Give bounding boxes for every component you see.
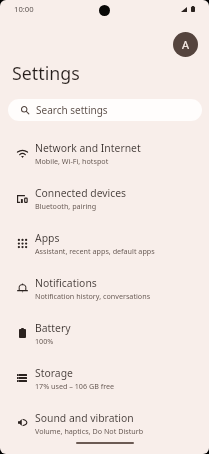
staticText: 10:00 [14,4,34,14]
button[interactable]: Apps [0,221,209,266]
staticText: Settings [12,61,80,85]
staticText: Storage [35,366,73,380]
staticText: Volume, haptics, Do Not Disturb [35,426,144,436]
button[interactable]: Notifications [0,266,209,311]
button[interactable]: Storage [0,356,209,401]
staticText: Network and Internet [35,141,141,155]
staticText: Mobile, Wi-Fi, hotspot [35,156,109,166]
staticText: Notification history, conversations [35,291,151,301]
button[interactable]: Battery [0,311,209,356]
button[interactable]: Account [173,32,198,57]
button[interactable]: Search settings [8,99,202,121]
staticText: Bluetooth, pairing [35,201,97,211]
staticText: 17% used – 106 GB free [35,381,115,391]
staticText: Connected devices [35,186,127,200]
staticText: Assistant, recent apps, default apps [35,246,155,256]
staticText: Sound and vibration [35,411,134,425]
staticText: Notifications [35,276,97,290]
staticText: Apps [35,231,60,245]
button[interactable]: Sound and vibration [0,401,209,446]
button[interactable]: Network and Internet [0,131,209,176]
staticText: Battery [35,321,71,335]
staticText: A [182,37,190,52]
staticText: 100% [35,336,54,346]
button[interactable]: Connected devices [0,176,209,221]
staticText: Search settings [36,103,108,117]
